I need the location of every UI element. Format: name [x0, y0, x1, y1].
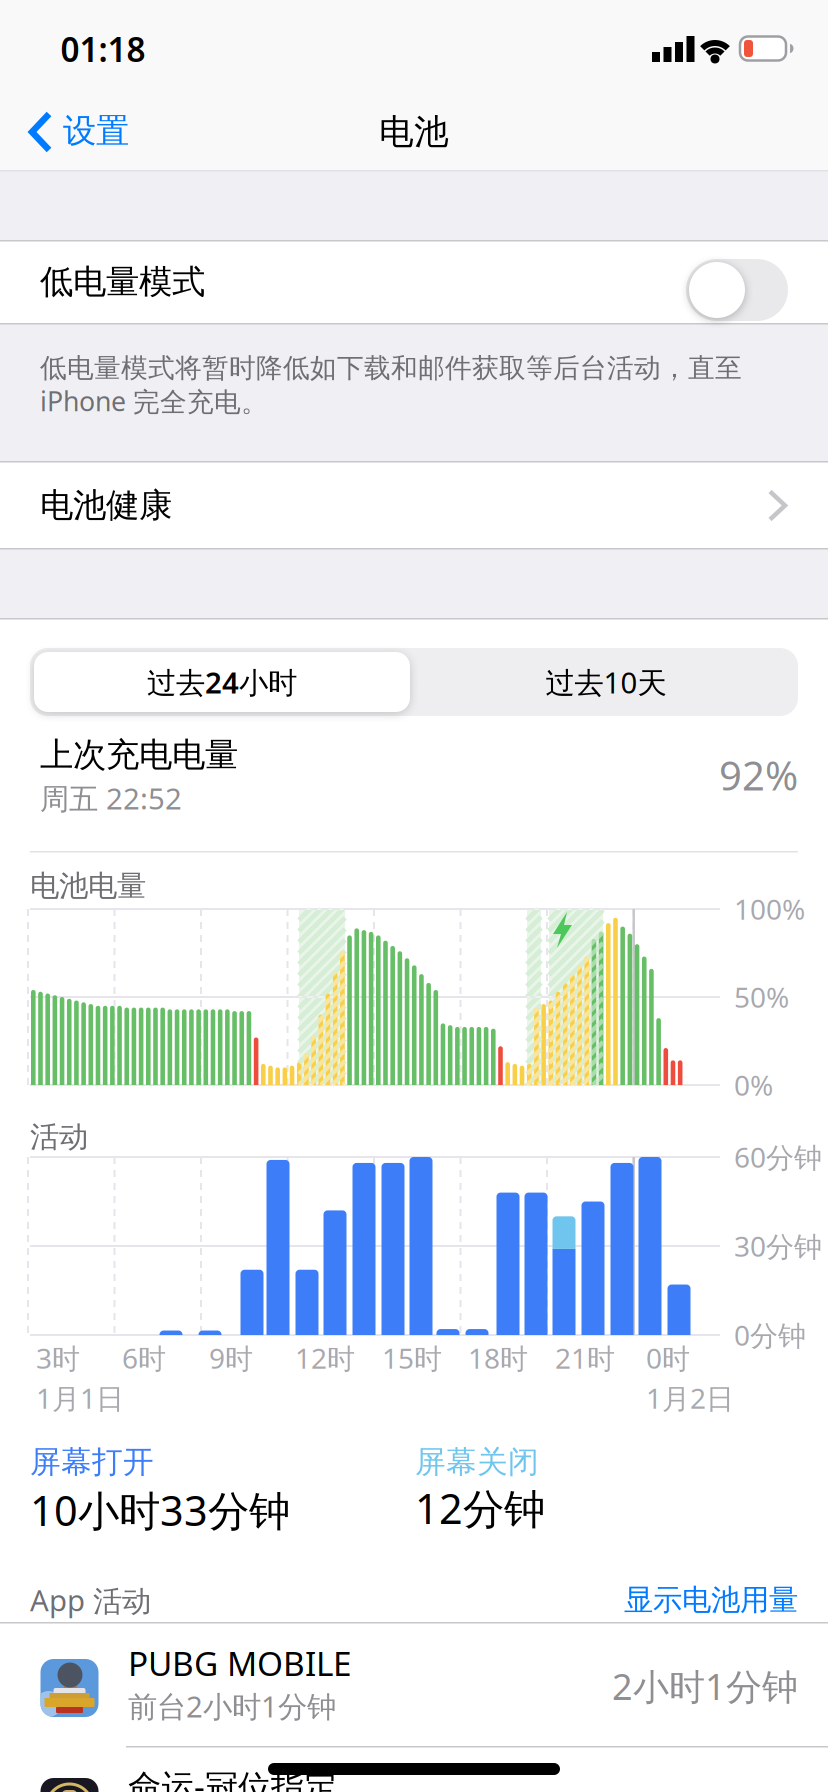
staticText: 活动: [30, 1119, 88, 1155]
button[interactable]: 返回设置: [28, 110, 178, 154]
staticText: 21时: [555, 1339, 615, 1377]
staticText: 9时: [209, 1339, 253, 1377]
staticText: 18时: [468, 1339, 528, 1377]
staticText: 15时: [382, 1339, 442, 1377]
staticText: 3时: [36, 1339, 80, 1377]
staticText: 30分钟: [734, 1227, 822, 1265]
staticText: 60分钟: [734, 1138, 822, 1176]
staticText: iPhone 完全充电。: [40, 383, 268, 419]
staticText: 过去24小时: [147, 662, 297, 701]
staticText: 命运-冠位指定: [128, 1764, 337, 1792]
staticText: 电池电量: [30, 868, 146, 904]
button[interactable]: 过去24小时: [32, 650, 412, 714]
staticText: App 活动: [30, 1580, 151, 1619]
staticText: 电池健康: [40, 485, 172, 526]
staticText: 周五 22:52: [40, 778, 182, 817]
staticText: 前台2小时1分钟: [128, 1686, 336, 1725]
staticText: 0%: [734, 1066, 773, 1104]
staticText: 低电量模式将暂时降低如下载和邮件获取等后台活动，直至: [40, 352, 742, 384]
staticText: 0分钟: [734, 1316, 806, 1354]
staticText: 100%: [734, 890, 805, 928]
staticText: 低电量模式: [40, 261, 205, 302]
button[interactable]: 电池健康: [0, 461, 828, 548]
staticText: 2小时1分钟: [612, 1662, 798, 1710]
staticText: 10小时33分钟: [30, 1483, 290, 1537]
staticText: 6时: [122, 1339, 166, 1377]
staticText: 50%: [734, 978, 789, 1016]
staticText: 上次充电电量: [40, 734, 238, 775]
staticText: 12分钟: [415, 1481, 545, 1535]
staticText: 屏幕打开: [30, 1443, 154, 1481]
button[interactable]: 命运-冠位指定: [0, 1744, 828, 1792]
button[interactable]: 低电量模式: [686, 259, 788, 321]
staticText: 1月1日: [36, 1379, 124, 1417]
button[interactable]: 过去10天: [416, 650, 796, 714]
staticText: 92%: [719, 748, 798, 801]
staticText: PUBG MOBILE: [128, 1641, 352, 1685]
staticText: 屏幕关闭: [415, 1443, 539, 1481]
staticText: 12时: [295, 1339, 355, 1377]
button[interactable]: PUBG MOBILE: [0, 1624, 828, 1748]
staticText: 设置: [63, 110, 129, 151]
staticText: 显示电池用量: [624, 1582, 798, 1618]
button[interactable]: 显示电池用量: [558, 1578, 798, 1622]
staticText: 1月2日: [646, 1379, 734, 1417]
staticText: 01:18: [60, 27, 145, 71]
staticText: 过去10天: [545, 662, 666, 701]
staticText: 电池: [379, 111, 449, 153]
staticText: 0时: [646, 1339, 690, 1377]
